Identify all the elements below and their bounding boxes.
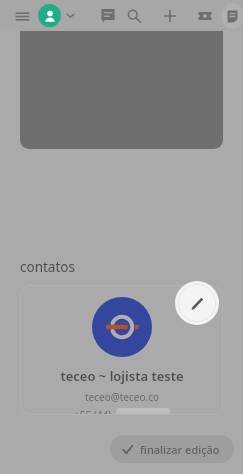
button[interactable]: Edit xyxy=(175,281,219,325)
staticText: finalizar edição xyxy=(140,442,220,457)
button[interactable]: Account xyxy=(38,4,75,27)
button[interactable]: finalizar edição xyxy=(110,435,234,463)
staticText: teceo@teceo.co xyxy=(85,390,159,404)
button[interactable]: teceo ~ lojista teste xyxy=(20,285,223,415)
staticText: +55 (44) xyxy=(74,408,112,415)
button[interactable]: Menu xyxy=(9,3,35,29)
staticText: contatos xyxy=(20,258,75,276)
staticText: teceo ~ lojista teste xyxy=(60,367,184,385)
button[interactable]: Notes xyxy=(222,3,243,29)
button[interactable]: Search xyxy=(121,3,147,29)
button[interactable]: Add xyxy=(157,3,183,29)
button[interactable]: Messages xyxy=(95,3,121,29)
button[interactable]: Offers xyxy=(192,3,218,29)
